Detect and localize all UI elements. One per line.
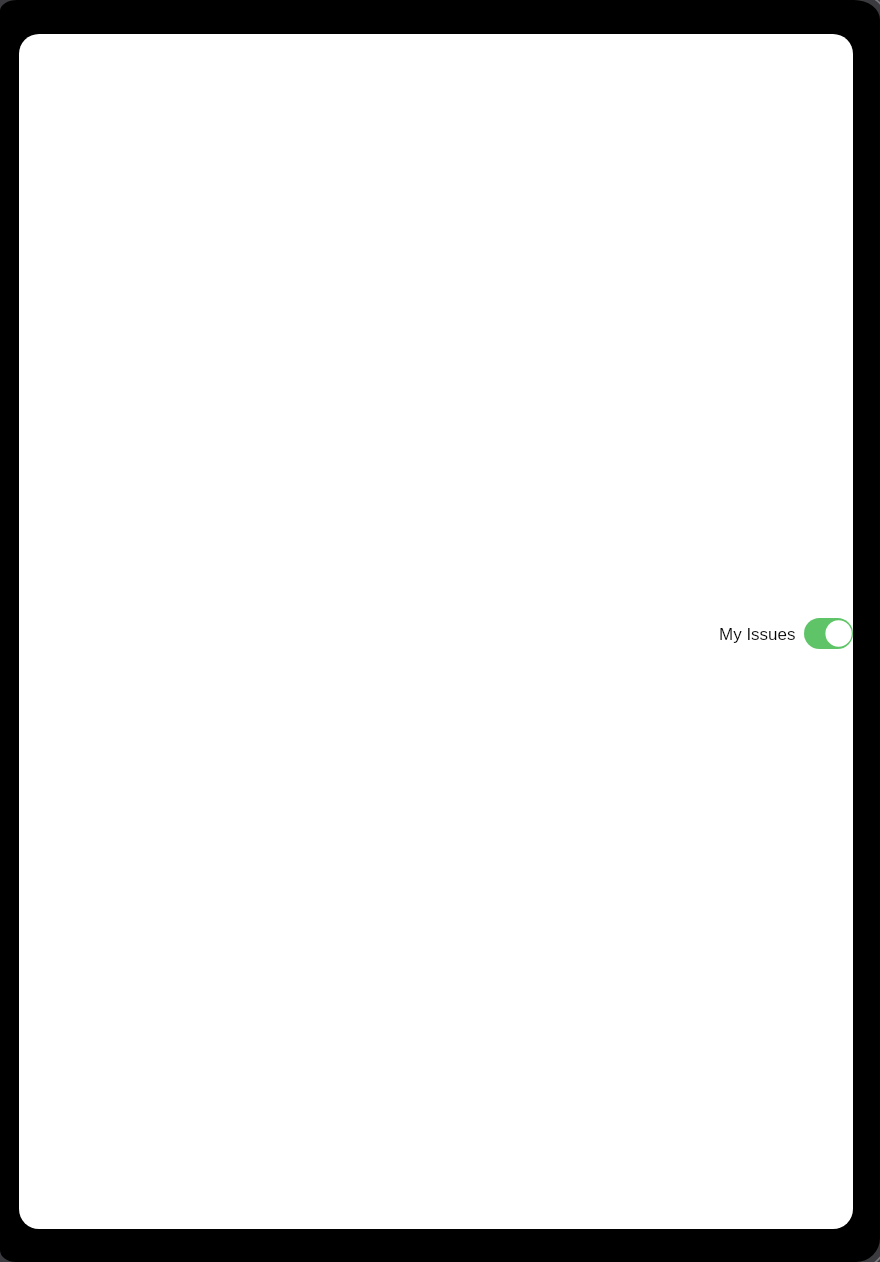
staticText: My Issues — [719, 625, 796, 644]
button[interactable]: My Issues — [719, 611, 853, 655]
button[interactable]: My Issues filter, on — [804, 618, 853, 649]
